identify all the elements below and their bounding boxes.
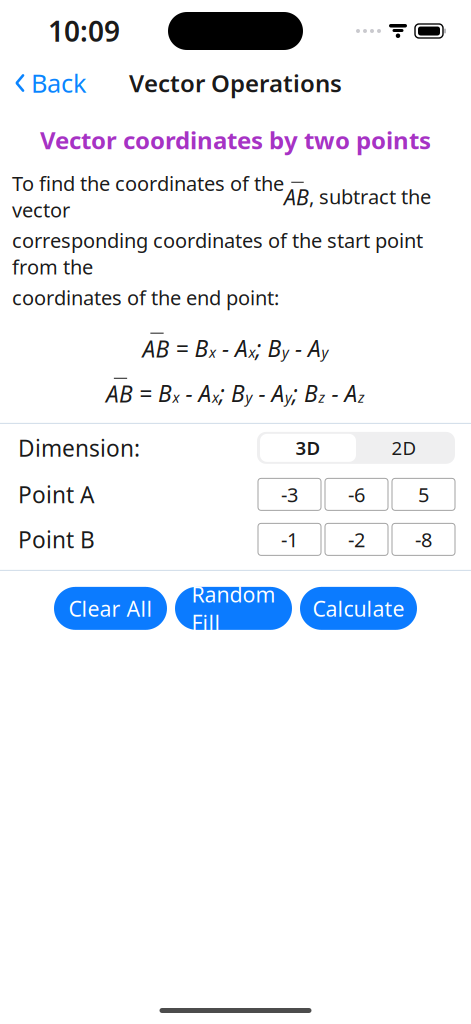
staticText: B [231,378,245,408]
staticText: − [179,378,198,408]
button[interactable]: -6 [325,478,388,510]
button[interactable]: Random Fill [175,587,292,630]
staticText: 10:09 [48,12,120,50]
staticText: Vector coordinates by two points [40,124,431,156]
button[interactable]: -2 [325,523,388,555]
staticText: − [289,333,308,363]
staticText: x [209,342,216,362]
button[interactable]: 5 [392,478,455,510]
button[interactable]: -1 [258,523,321,555]
staticText: Random Fill [191,580,275,637]
staticText: ; [255,333,267,363]
staticText: -8 [415,526,432,553]
button[interactable]: -3 [258,478,321,510]
staticText: y [285,387,292,407]
staticText: AB [142,334,169,364]
staticText: = [133,378,158,408]
staticText: -6 [348,481,365,508]
staticText: − [325,378,344,408]
staticText: A [235,333,248,363]
staticText: z [318,387,325,407]
staticText: coordinates of the end point: [12,284,279,311]
staticText: B [158,378,172,408]
staticText: To find the coordinates of the vector [12,170,284,223]
button[interactable]: Calculate [300,587,417,630]
staticText: -1 [281,526,298,553]
staticText: B [304,378,318,408]
staticText: z [358,387,365,407]
staticText: Vector Operations [129,67,342,99]
staticText: B [267,333,281,363]
button[interactable]: -8 [392,523,455,555]
staticText: AB [106,379,133,409]
staticText: Back [31,66,87,100]
staticText: -2 [348,526,365,553]
staticText: corresponding coordinates of the start p… [12,227,423,280]
button[interactable]: Back [0,60,87,106]
button[interactable]: Clear All [54,587,167,630]
staticText: Point B [18,524,95,554]
staticText: = [169,333,194,363]
staticText: 3D [295,435,320,460]
button[interactable]: 2D [356,434,452,462]
staticText: B [194,333,208,363]
staticText: x [172,387,179,407]
staticText: A [344,378,357,408]
staticText: y [245,387,252,407]
staticText: − [252,378,271,408]
staticText: Dimension: [18,433,140,463]
staticText: AB [284,183,309,211]
staticText: 5 [418,481,429,508]
staticText: ; [219,378,231,408]
button[interactable]: 3D [260,434,356,462]
staticText: A [308,333,321,363]
staticText: x [212,387,219,407]
staticText: Calculate [312,594,404,622]
staticText: 2D [391,435,416,460]
staticText: Point A [18,479,94,509]
staticText: y [282,342,289,362]
staticText: y [321,342,328,362]
staticText: A [271,378,284,408]
staticText: x [248,342,255,362]
staticText: A [198,378,211,408]
staticText: Clear All [68,594,152,622]
staticText: -3 [281,481,298,508]
staticText: ; [292,378,304,408]
staticText: − [216,333,235,363]
staticText: , subtract the [309,183,431,210]
